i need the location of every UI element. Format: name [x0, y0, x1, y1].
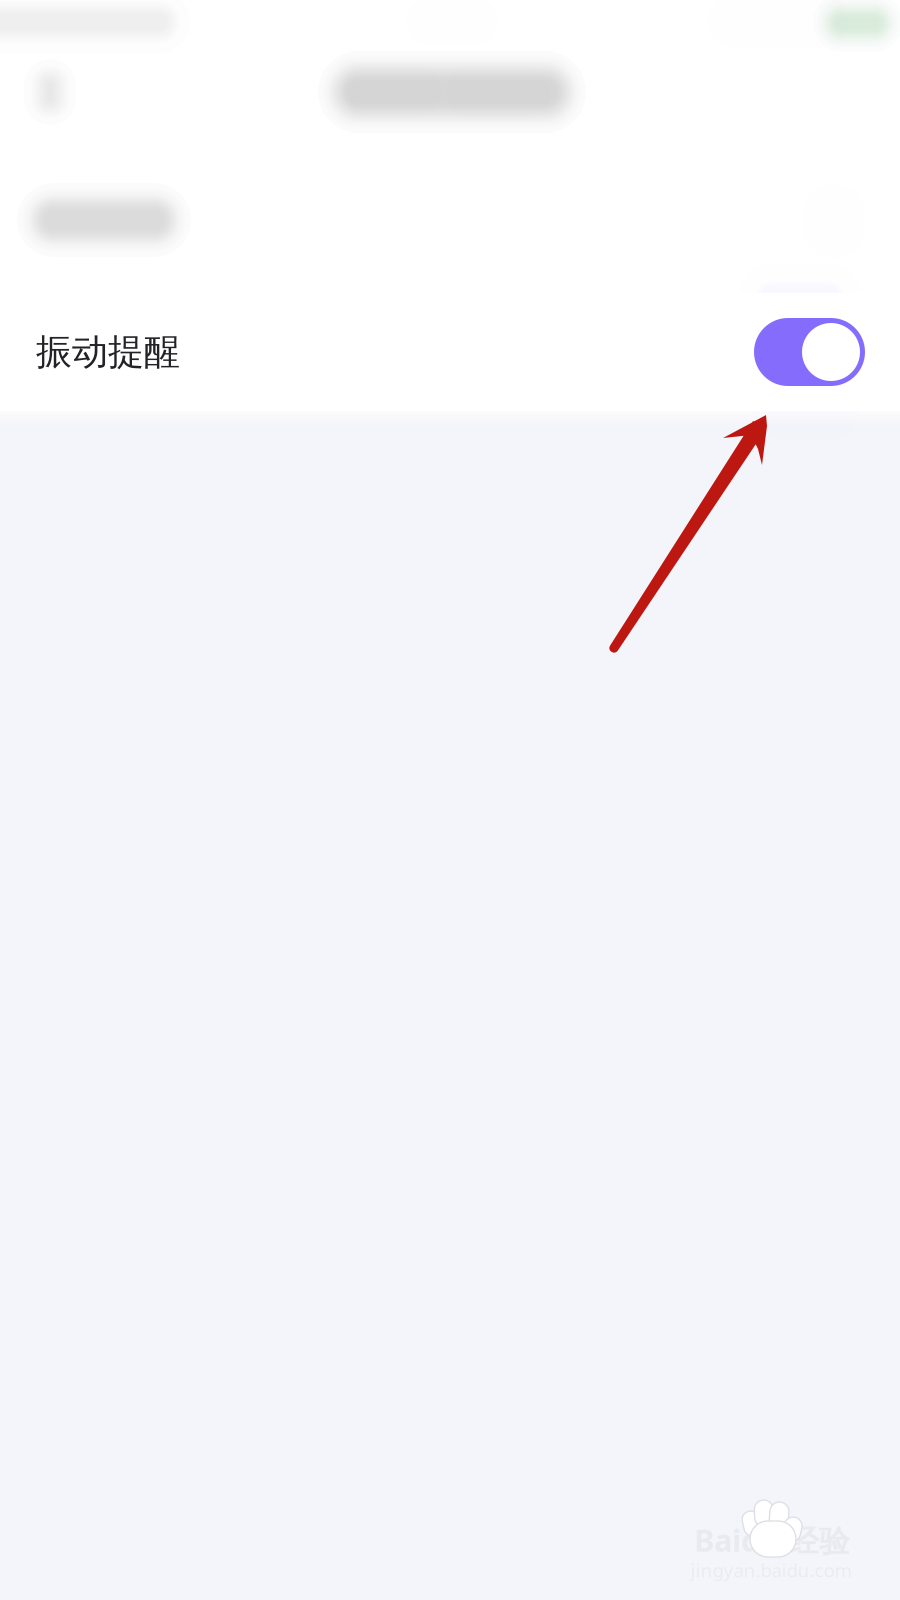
staticText: 振动提醒: [36, 330, 180, 374]
staticText: Baidu 经验: [694, 1520, 850, 1560]
button[interactable]: Setting: [0, 175, 900, 265]
button[interactable]: Back: [6, 48, 94, 136]
staticText: jingyan.baidu.com: [690, 1558, 851, 1582]
button[interactable]: 振动提醒: [0, 293, 900, 411]
